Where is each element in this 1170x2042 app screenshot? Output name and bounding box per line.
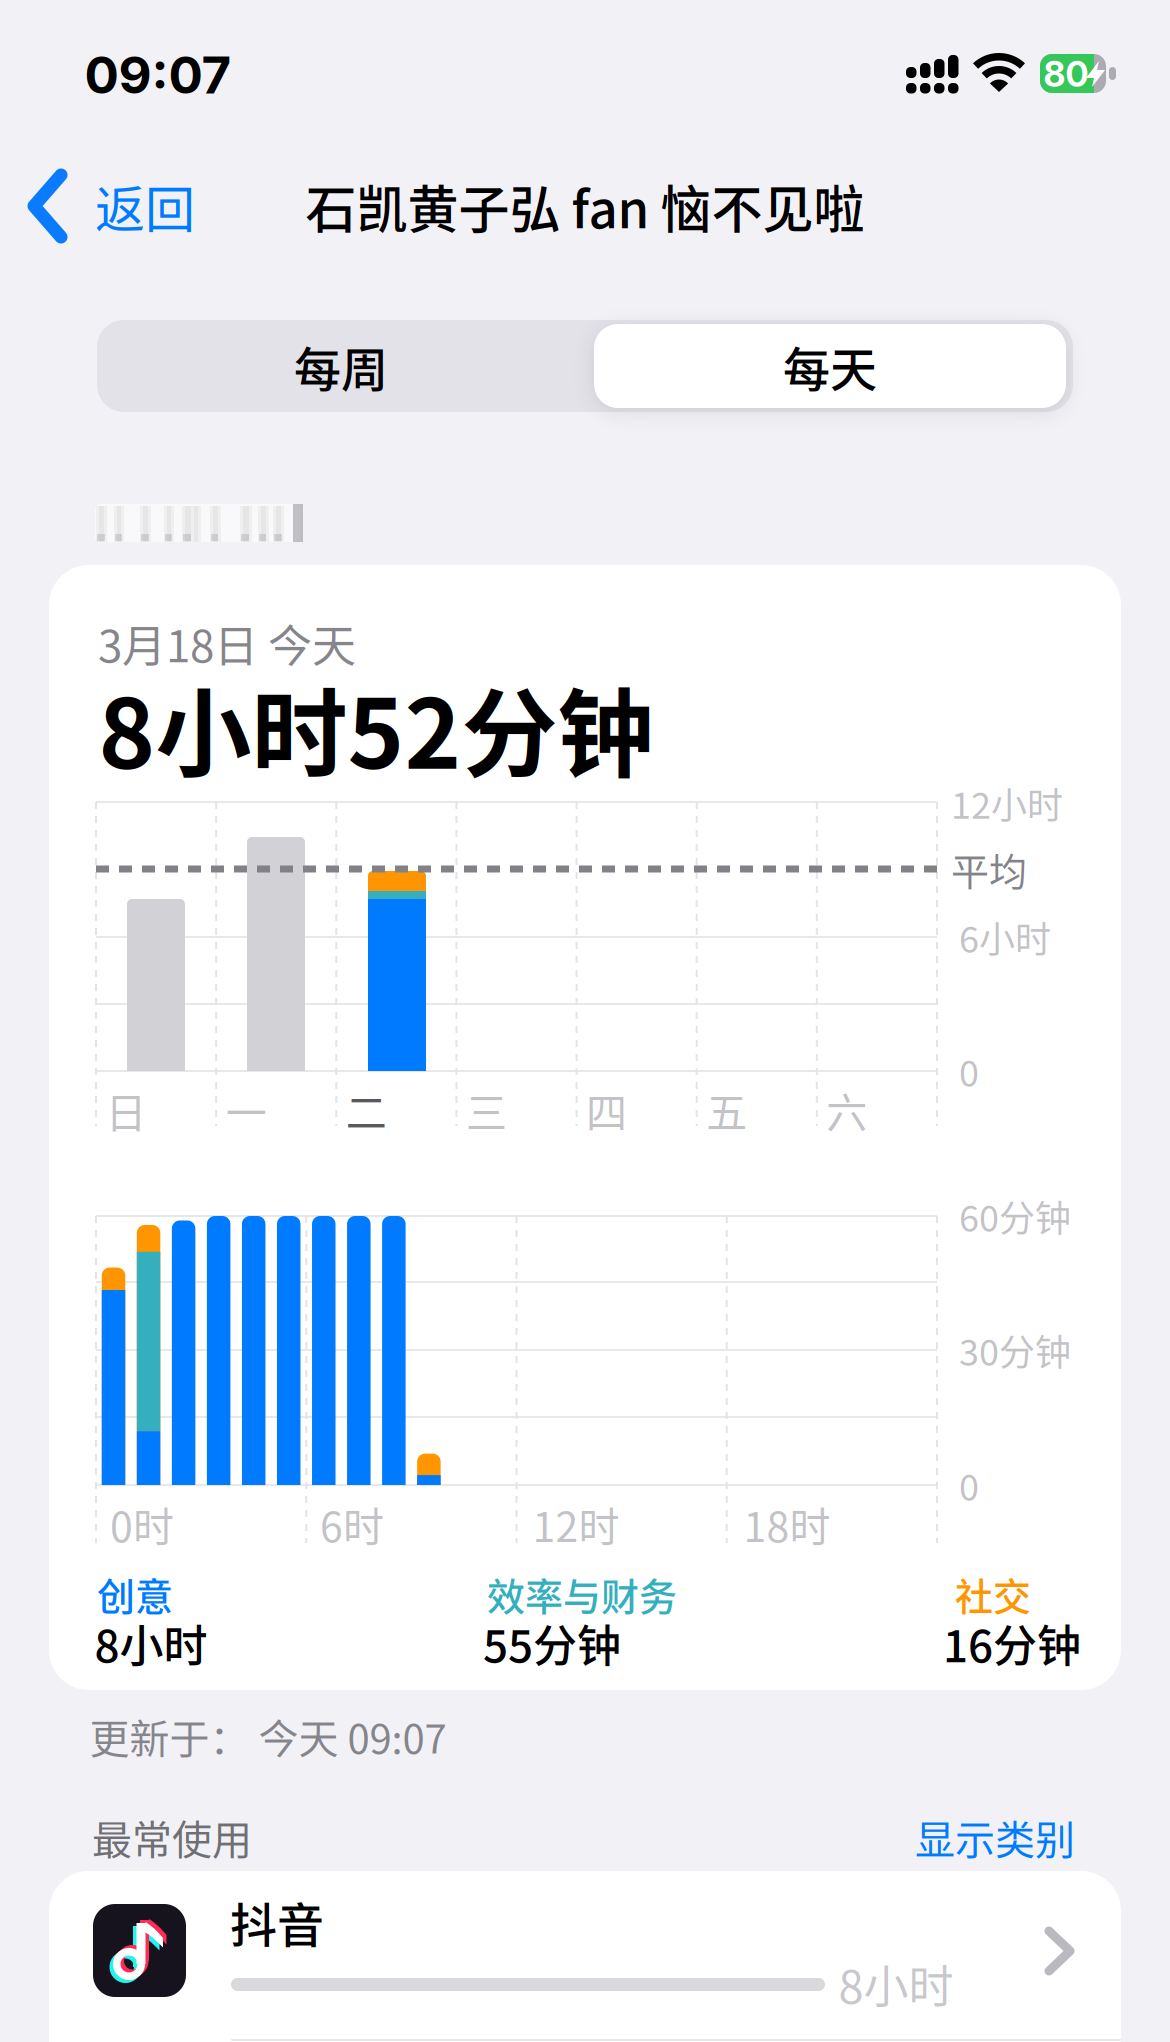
staticText: 创意 xyxy=(97,1566,173,1621)
staticText: 16分钟 xyxy=(943,1611,1081,1675)
staticText: 18时 xyxy=(743,1494,830,1554)
staticText: 30分钟 xyxy=(959,1324,1071,1376)
staticText: 最常使用 xyxy=(92,1808,252,1866)
staticText: 日 xyxy=(105,1080,146,1140)
staticText: 0 xyxy=(959,1459,979,1511)
staticText: 55分钟 xyxy=(483,1611,621,1675)
staticText: 显示类别 xyxy=(915,1808,1075,1866)
staticText: 6小时 xyxy=(959,911,1051,963)
staticText: 平均 xyxy=(951,841,1027,896)
staticText: 抖音 xyxy=(230,1888,324,1956)
staticText: 3月18日 今天 xyxy=(98,611,356,675)
staticText: 60分钟 xyxy=(959,1190,1071,1242)
staticText: 09:07 xyxy=(84,44,231,106)
staticText: 8小时52分钟 xyxy=(98,657,653,796)
staticText: 一 xyxy=(226,1080,267,1140)
button[interactable]: 每天 xyxy=(590,320,1070,412)
staticText: 四 xyxy=(586,1080,627,1140)
button[interactable]: 显示类别 xyxy=(895,1807,1095,1867)
staticText: 五 xyxy=(706,1080,747,1140)
staticText: 8小时 xyxy=(94,1611,207,1675)
staticText: 二 xyxy=(346,1080,387,1140)
staticText: 石凯黄子弘 fan 恼不见啦 xyxy=(305,169,864,243)
button[interactable]: 每周 xyxy=(97,320,585,412)
staticText: 0时 xyxy=(110,1494,174,1554)
staticText: 效率与财务 xyxy=(487,1566,677,1621)
staticText: 80 xyxy=(1043,53,1088,95)
staticText: 更新于： 今天 09:07 xyxy=(89,1707,446,1765)
button[interactable]: 抖音 xyxy=(49,1871,1121,2042)
staticText: 12时 xyxy=(532,1494,619,1554)
staticText: 每天 xyxy=(783,332,877,400)
staticText: 0 xyxy=(959,1045,979,1097)
staticText: 12小时 xyxy=(951,777,1063,829)
staticText: 三 xyxy=(466,1080,507,1140)
staticText: 8小时 xyxy=(838,1951,953,2017)
staticText: 返回 xyxy=(95,170,195,242)
button[interactable]: 返回 xyxy=(20,161,250,251)
staticText: 每周 xyxy=(294,332,388,400)
staticText: 六 xyxy=(826,1080,867,1140)
staticText: 社交 xyxy=(955,1566,1031,1621)
staticText: 6时 xyxy=(320,1494,384,1554)
